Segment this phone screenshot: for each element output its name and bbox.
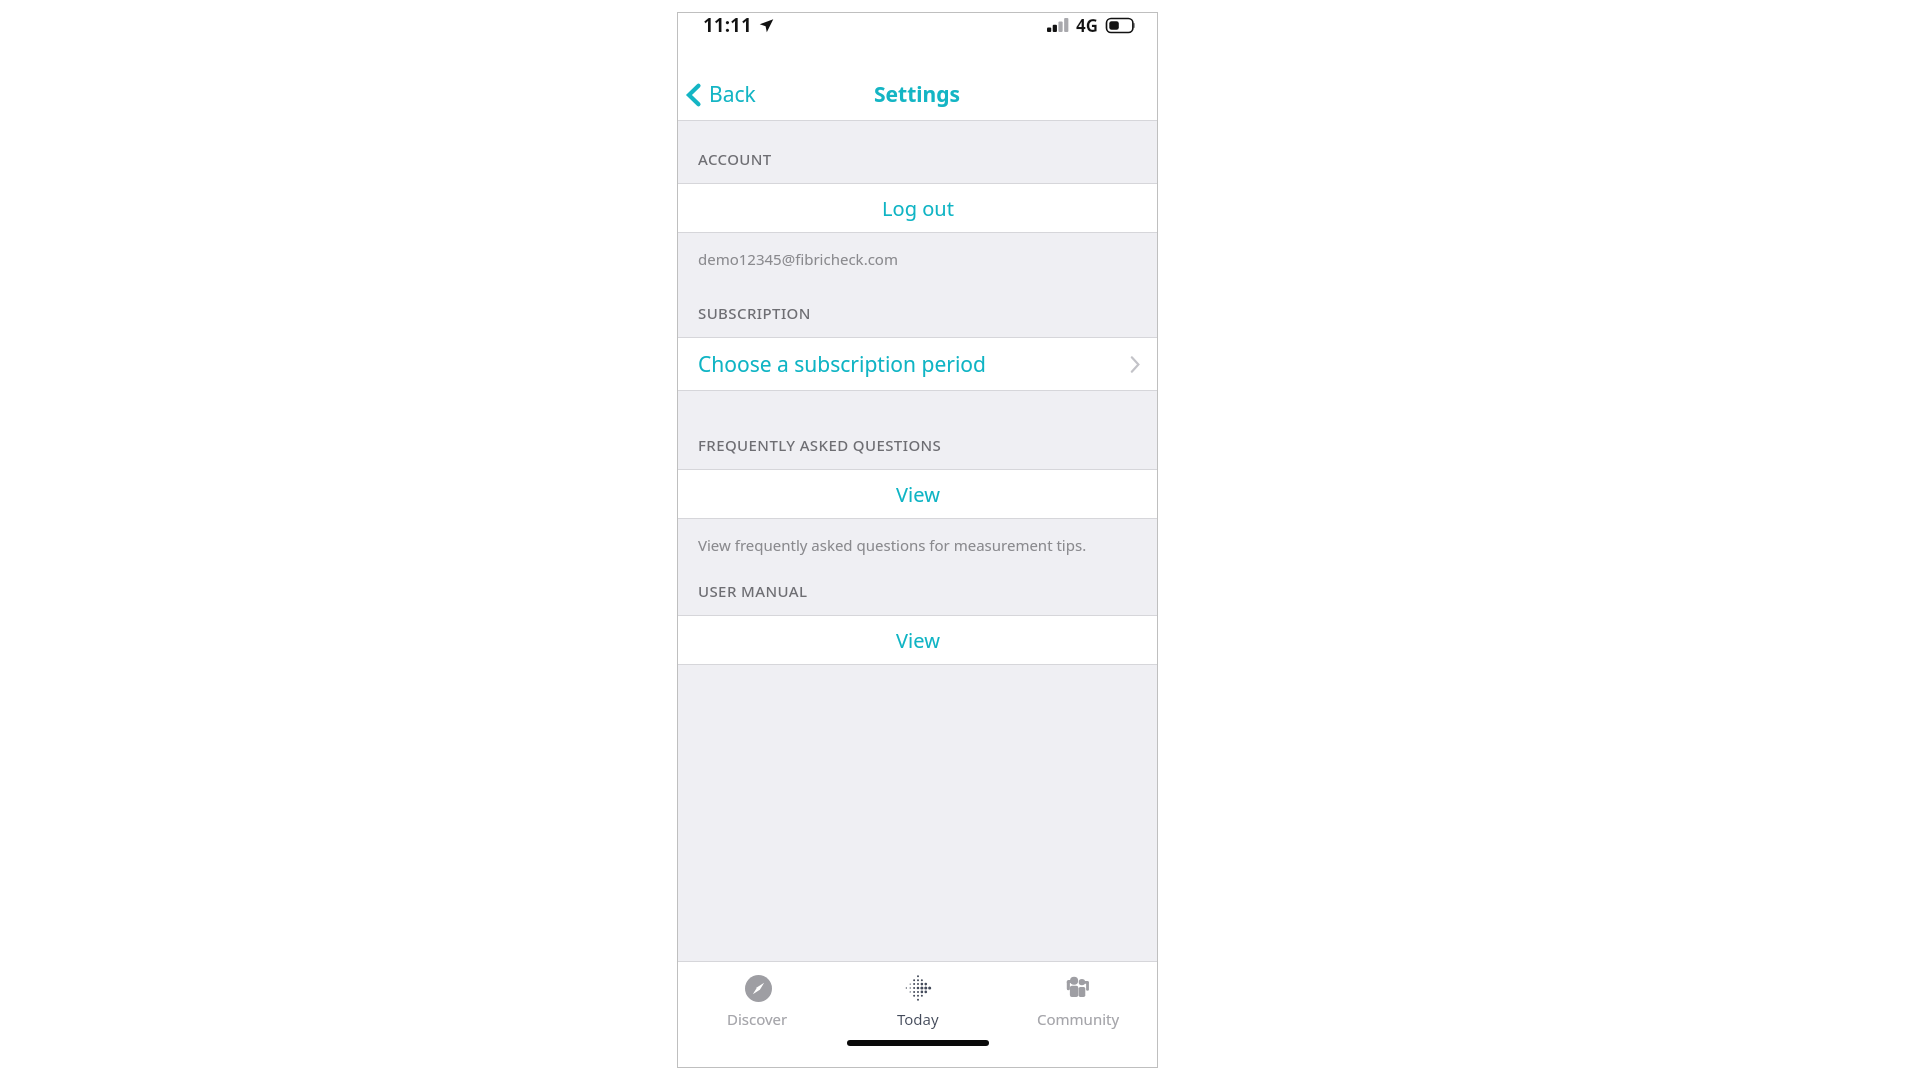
staticText: Discover bbox=[727, 1009, 788, 1029]
button[interactable]: Today bbox=[838, 962, 998, 1040]
button[interactable]: Back bbox=[677, 74, 768, 115]
staticText: Choose a subscription period bbox=[698, 350, 986, 379]
staticText: Settings bbox=[874, 80, 961, 109]
staticText: View frequently asked questions for meas… bbox=[698, 535, 1087, 555]
staticText: FREQUENTLY ASKED QUESTIONS bbox=[698, 435, 942, 455]
staticText: View bbox=[896, 481, 940, 508]
button[interactable]: Community bbox=[998, 962, 1158, 1040]
button[interactable]: Choose a subscription period bbox=[677, 338, 1158, 390]
staticText: ACCOUNT bbox=[698, 149, 772, 169]
staticText: Back bbox=[709, 80, 756, 109]
staticText: Community bbox=[1037, 1009, 1120, 1029]
staticText: 4G bbox=[1076, 14, 1099, 37]
button[interactable]: View bbox=[677, 470, 1158, 518]
staticText: View bbox=[896, 627, 940, 654]
button[interactable]: Discover bbox=[677, 962, 838, 1040]
staticText: Today bbox=[897, 1009, 939, 1029]
staticText: USER MANUAL bbox=[698, 581, 808, 601]
staticText: SUBSCRIPTION bbox=[698, 303, 811, 323]
button[interactable]: View bbox=[677, 616, 1158, 664]
button[interactable]: Log out bbox=[677, 184, 1158, 232]
staticText: demo12345@fibricheck.com bbox=[698, 249, 898, 269]
staticText: Log out bbox=[882, 195, 954, 222]
staticText: 11:11 bbox=[703, 12, 752, 38]
